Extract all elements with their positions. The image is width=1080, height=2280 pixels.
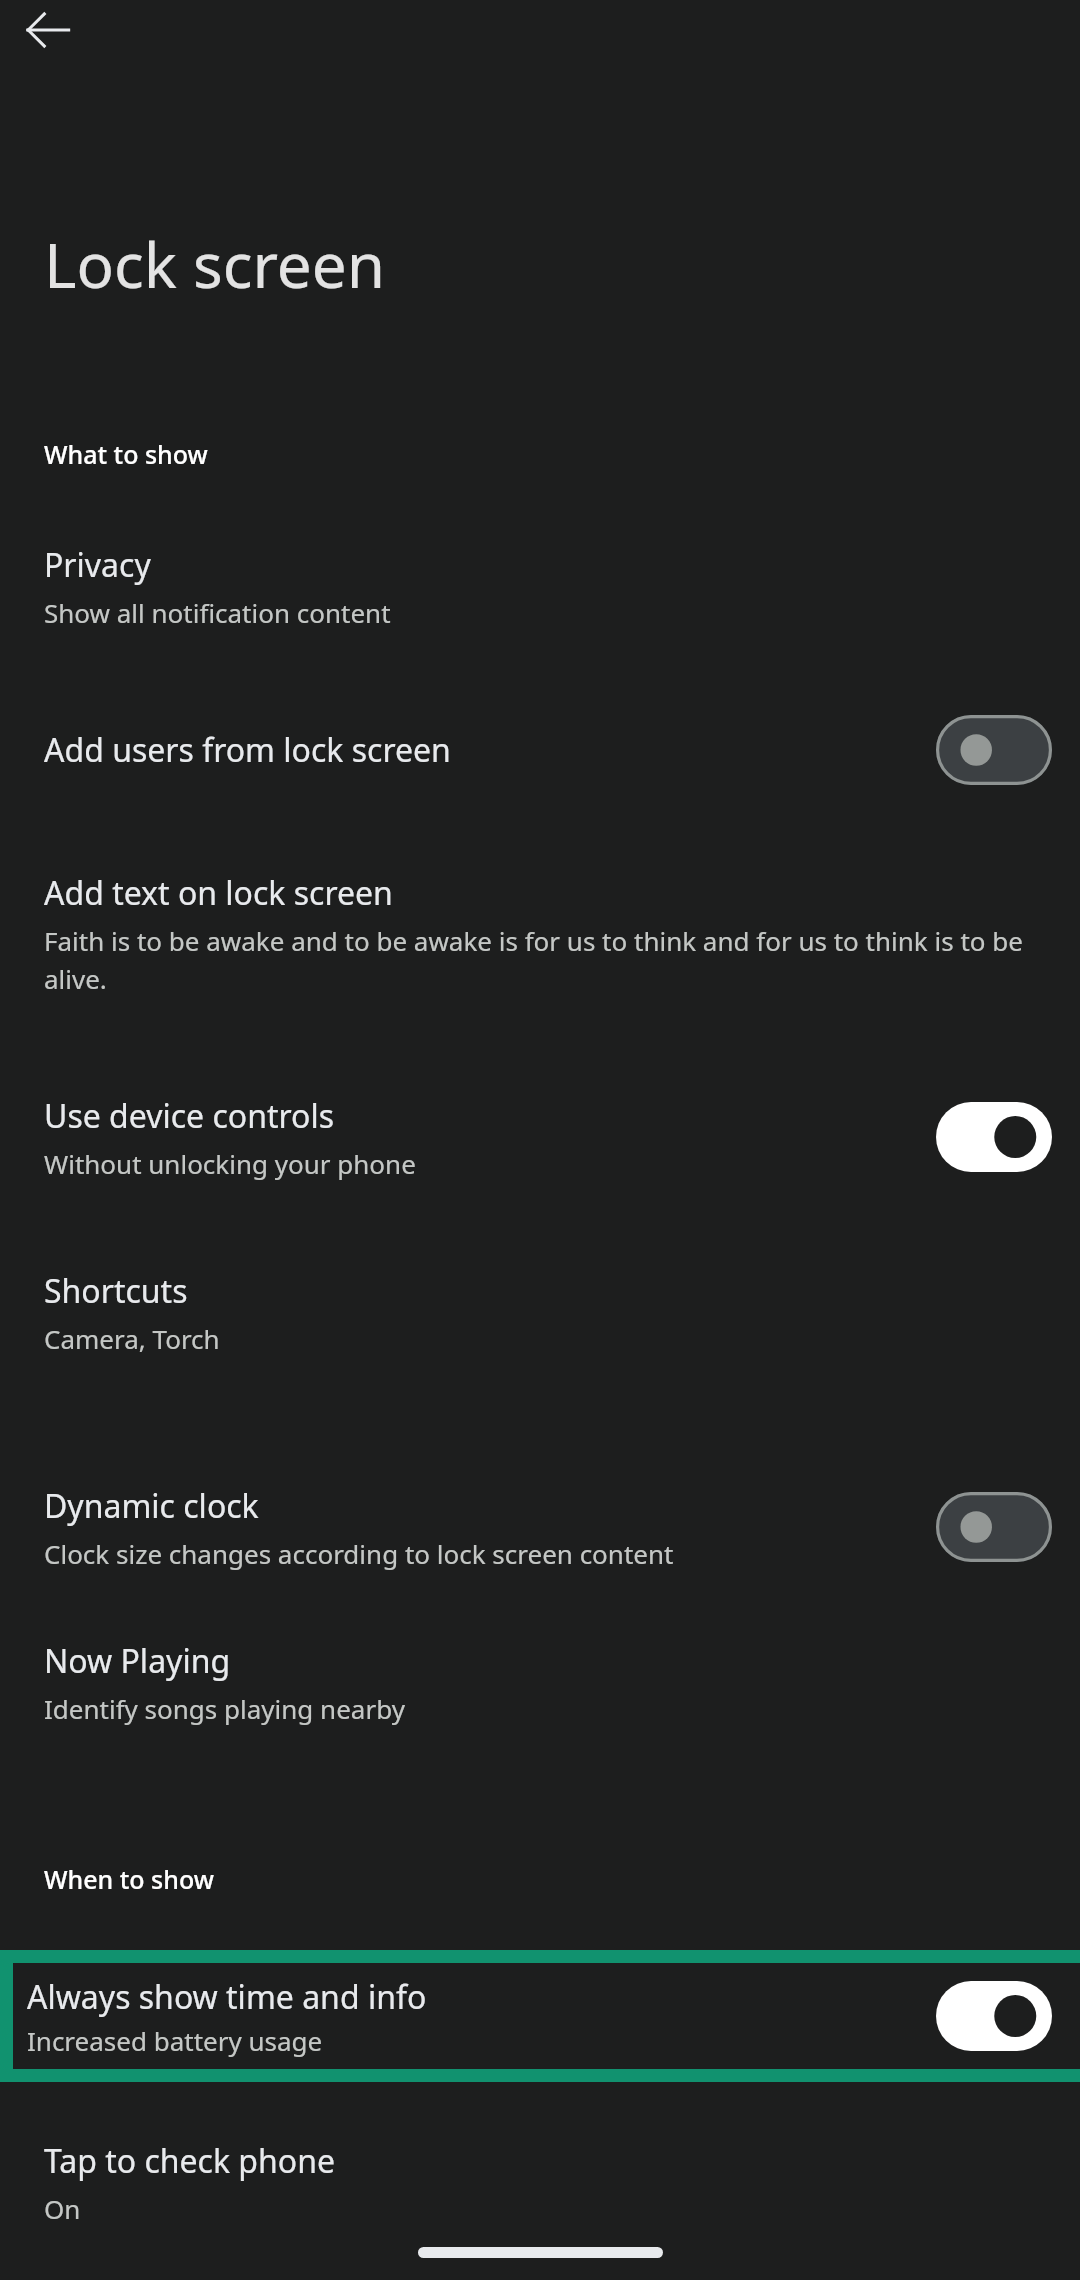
staticText: Clock size changes according to lock scr… [44, 1536, 674, 1571]
staticText: Tap to check phone [44, 2139, 336, 2183]
staticText: Now Playing [44, 1639, 231, 1683]
staticText: Add users from lock screen [44, 728, 936, 772]
staticText: Dynamic clock [44, 1484, 259, 1528]
staticText: When to show [44, 1862, 214, 1896]
button[interactable]: Tap to check phone [0, 2125, 1080, 2240]
staticText: Always show time and info [27, 1975, 427, 2019]
button[interactable]: Use device controls [0, 1072, 1080, 1202]
staticText: What to show [44, 437, 208, 471]
staticText: Camera, Torch [44, 1321, 220, 1356]
staticText: Shortcuts [44, 1269, 188, 1313]
button[interactable]: Back [0, 0, 96, 78]
button[interactable]: Always show time and info [13, 1963, 1080, 2069]
staticText: Identify songs playing nearby [44, 1691, 405, 1726]
staticText: Increased battery usage [27, 2023, 323, 2058]
staticText: On [44, 2191, 81, 2226]
staticText: Faith is to be awake and to be awake is … [44, 923, 1040, 996]
button[interactable]: Privacy [0, 525, 1080, 665]
button[interactable]: Shortcuts [0, 1255, 1080, 1385]
button[interactable]: Add text on lock screen [0, 855, 1080, 1035]
staticText: Privacy [44, 543, 151, 587]
button[interactable]: Dynamic clock [0, 1462, 1080, 1592]
staticText: Without unlocking your phone [44, 1146, 416, 1181]
staticText: Lock screen [44, 222, 386, 306]
staticText: Show all notification content [44, 595, 391, 630]
staticText: Use device controls [44, 1094, 334, 1138]
staticText: Add text on lock screen [44, 871, 393, 915]
button[interactable]: Add users from lock screen [0, 700, 1080, 800]
button[interactable]: Now Playing [0, 1625, 1080, 1765]
